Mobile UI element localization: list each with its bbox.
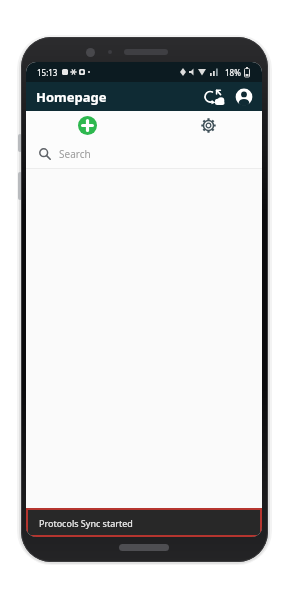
staticText: 15:13 (37, 67, 58, 78)
staticText: Homepage (36, 88, 107, 106)
button[interactable] (202, 85, 226, 109)
staticText: Search (59, 147, 91, 161)
button[interactable] (78, 116, 97, 135)
staticText: Protocols Sync started (39, 517, 133, 529)
button[interactable] (233, 86, 255, 108)
button[interactable] (198, 115, 219, 136)
staticText: 18% (225, 67, 241, 78)
button[interactable]: Search (26, 140, 262, 169)
